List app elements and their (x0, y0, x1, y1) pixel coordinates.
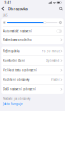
button[interactable]: Hledat (57, 5, 65, 12)
button[interactable]: Režim spánku (1, 46, 64, 56)
staticText: Režim barev a nočního (3, 38, 32, 42)
button[interactable]: Další nastavení zobrazení (1, 85, 64, 94)
button[interactable]: Obrazovka (0, 5, 28, 12)
staticText: Automatické nastavení (3, 29, 32, 33)
staticText: JAS (3, 14, 7, 17)
button[interactable]: Komfortní čtení (1, 56, 64, 65)
staticText: Komfortní čtení (3, 59, 25, 62)
staticText: 9:41 (4, 1, 11, 4)
staticText: Rozlišení obrazovky (3, 78, 29, 81)
staticText: Jak to funguje (3, 102, 23, 106)
staticText: Obrazovka (8, 6, 28, 11)
button[interactable]: Režim barev a nočního (1, 36, 64, 44)
button[interactable]: Velikost textu a zobrazení (1, 65, 64, 75)
button[interactable]: Automatické nastavení (1, 27, 64, 35)
staticText: Po 30 minut (42, 49, 60, 53)
staticText: Vlastní (51, 78, 60, 81)
staticText: Nastavte jas obrazovky (3, 97, 30, 100)
button[interactable]: Jak to funguje (3, 102, 23, 106)
staticText: Další nastavení zobrazení (3, 87, 36, 91)
staticText: Velikost textu a zobrazení (3, 68, 37, 72)
staticText: Optimálně (46, 59, 60, 62)
staticText: Režim spánku (3, 49, 20, 53)
button[interactable]: Rozlišení obrazovky (1, 75, 64, 84)
